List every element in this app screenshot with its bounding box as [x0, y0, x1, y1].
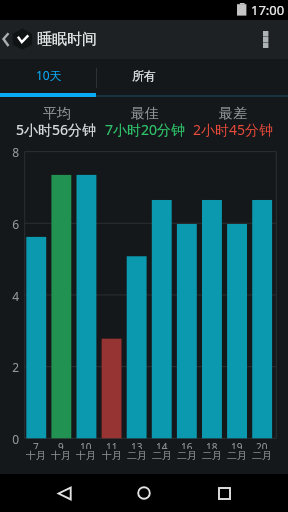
staticText: 9	[58, 440, 64, 449]
button[interactable]: Back	[42, 474, 86, 512]
staticText: 10天	[36, 67, 62, 83]
staticText: 16	[181, 440, 193, 449]
staticText: 14	[156, 440, 168, 449]
staticText: 最佳	[131, 105, 159, 120]
staticText: 7小时20分钟	[105, 120, 186, 138]
staticText: 20	[256, 440, 268, 449]
button[interactable]: Recents	[202, 474, 246, 512]
staticText: 10	[80, 440, 92, 449]
staticText: 最差	[219, 105, 247, 120]
staticText: 5小时56分钟	[16, 120, 97, 138]
staticText: 二月	[227, 449, 247, 460]
staticText: 十月	[76, 449, 96, 460]
staticText: 11	[106, 440, 118, 449]
staticText: 二月	[202, 449, 222, 460]
button[interactable]: More options	[244, 20, 288, 59]
staticText: 二月	[152, 449, 172, 460]
staticText: 二月	[252, 449, 272, 460]
button[interactable]: Home	[122, 474, 166, 512]
staticText: 十月	[102, 449, 122, 460]
staticText: 13	[131, 440, 143, 449]
staticText: 二月	[127, 449, 147, 460]
button[interactable]: 所有	[96, 59, 192, 97]
staticText: 18	[206, 440, 218, 449]
staticText: 2	[1, 359, 19, 375]
staticText: 17:00	[251, 1, 285, 19]
staticText: 8	[1, 144, 19, 160]
staticText: 十月	[51, 449, 71, 460]
staticText: 19	[231, 440, 243, 449]
staticText: 2小时45分钟	[193, 120, 274, 138]
staticText: 睡眠时间	[37, 30, 97, 49]
staticText: 7	[33, 440, 39, 449]
button[interactable]: Back	[0, 20, 34, 59]
staticText: 所有	[132, 68, 156, 83]
staticText: 十月	[26, 449, 46, 460]
staticText: 0	[1, 431, 19, 447]
button[interactable]: 10天	[0, 59, 96, 97]
staticText: 平均	[43, 105, 71, 120]
staticText: 4	[1, 288, 19, 304]
staticText: 6	[1, 216, 19, 232]
staticText: 二月	[177, 449, 197, 460]
